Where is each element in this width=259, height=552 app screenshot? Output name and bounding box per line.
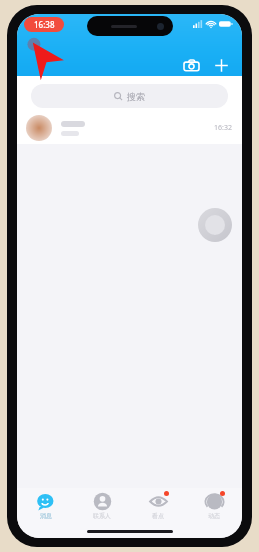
- button[interactable]: 搜索: [31, 84, 228, 108]
- staticText: 联系人: [93, 512, 111, 520]
- staticText: 动态: [208, 512, 220, 520]
- staticText: 消息: [40, 512, 52, 520]
- button[interactable]: 16:32: [17, 112, 242, 144]
- staticText: 16:32: [214, 123, 232, 133]
- button[interactable]: 动态: [186, 492, 242, 520]
- staticText: 16:38: [34, 19, 55, 30]
- button[interactable]: 消息: [17, 492, 74, 520]
- staticText: 搜索: [127, 91, 145, 102]
- button[interactable]: Floating assistant: [198, 208, 232, 242]
- button[interactable]: Camera: [178, 52, 204, 78]
- staticText: 看点: [152, 512, 164, 520]
- button[interactable]: Add: [208, 52, 234, 78]
- button[interactable]: 看点: [130, 492, 186, 520]
- button[interactable]: 联系人: [74, 492, 130, 520]
